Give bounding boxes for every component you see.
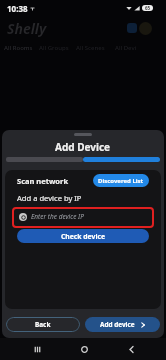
- button[interactable]: All Groups: [36, 40, 72, 56]
- staticText: All Devi: [115, 44, 137, 52]
- button[interactable]: All Devi: [108, 40, 144, 56]
- button[interactable]: Profile: [139, 22, 152, 35]
- staticText: All Groups: [39, 44, 69, 52]
- staticText: Add device: [100, 320, 135, 329]
- staticText: All Rooms: [4, 44, 33, 52]
- button[interactable]: Check device: [17, 229, 149, 243]
- staticText: 10:38: [7, 3, 28, 14]
- staticText: Add a device by IP: [17, 193, 82, 203]
- button[interactable]: All Rooms: [0, 40, 36, 56]
- staticText: Shelly: [7, 19, 47, 38]
- button[interactable]: All Scenes: [72, 40, 108, 56]
- staticText: Add Device: [55, 140, 111, 154]
- staticText: Scan network: [17, 176, 69, 186]
- button[interactable]: Home: [73, 338, 95, 360]
- staticText: Enter the device IP: [31, 212, 84, 221]
- button[interactable]: Back: [6, 317, 80, 332]
- button[interactable]: Recents: [26, 338, 48, 360]
- button[interactable]: Back: [120, 338, 142, 360]
- staticText: Check device: [61, 232, 106, 241]
- staticText: Back: [35, 320, 51, 329]
- button[interactable]: Add device: [85, 317, 160, 332]
- button[interactable]: Discovered List: [93, 174, 149, 187]
- staticText: All Scenes: [76, 44, 105, 52]
- button[interactable]: Notifications: [127, 23, 137, 33]
- staticText: 65: [145, 5, 151, 11]
- staticText: Discovered List: [98, 177, 144, 185]
